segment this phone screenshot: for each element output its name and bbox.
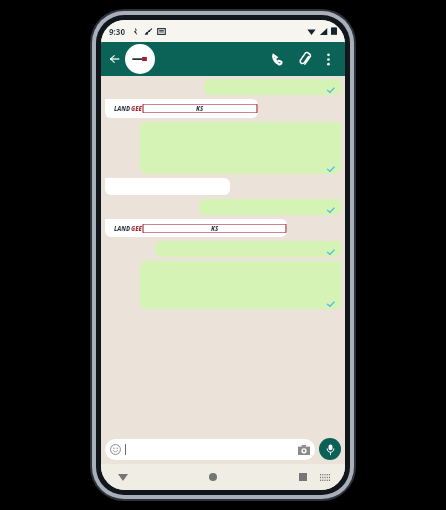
staticText: LAND xyxy=(114,105,131,113)
button[interactable]: Attach xyxy=(293,48,315,70)
button[interactable]: Voice message xyxy=(319,438,341,460)
button[interactable]: Back xyxy=(113,467,133,487)
button[interactable] xyxy=(105,178,230,195)
button[interactable]: Back xyxy=(105,49,125,69)
button[interactable] xyxy=(105,439,315,460)
button[interactable] xyxy=(140,122,341,174)
button[interactable] xyxy=(204,79,341,95)
staticText: LAND xyxy=(114,225,131,233)
button[interactable]: Recent apps xyxy=(293,467,313,487)
staticText: GEE xyxy=(131,225,142,233)
staticText: KS xyxy=(211,225,219,233)
button[interactable] xyxy=(155,241,341,257)
button[interactable]: Home xyxy=(203,467,223,487)
button[interactable] xyxy=(199,199,341,215)
button[interactable] xyxy=(140,261,341,309)
button[interactable]: Keyboard xyxy=(317,469,333,485)
button[interactable]: Contact avatar xyxy=(125,44,155,74)
staticText: GEE xyxy=(131,105,142,113)
button[interactable]: More options xyxy=(318,49,338,69)
staticText: 9:30 xyxy=(109,26,125,37)
staticText: KS xyxy=(196,105,204,113)
button[interactable]: LAND xyxy=(105,99,258,118)
button[interactable]: LAND xyxy=(105,219,287,237)
button[interactable]: Call xyxy=(266,48,288,70)
